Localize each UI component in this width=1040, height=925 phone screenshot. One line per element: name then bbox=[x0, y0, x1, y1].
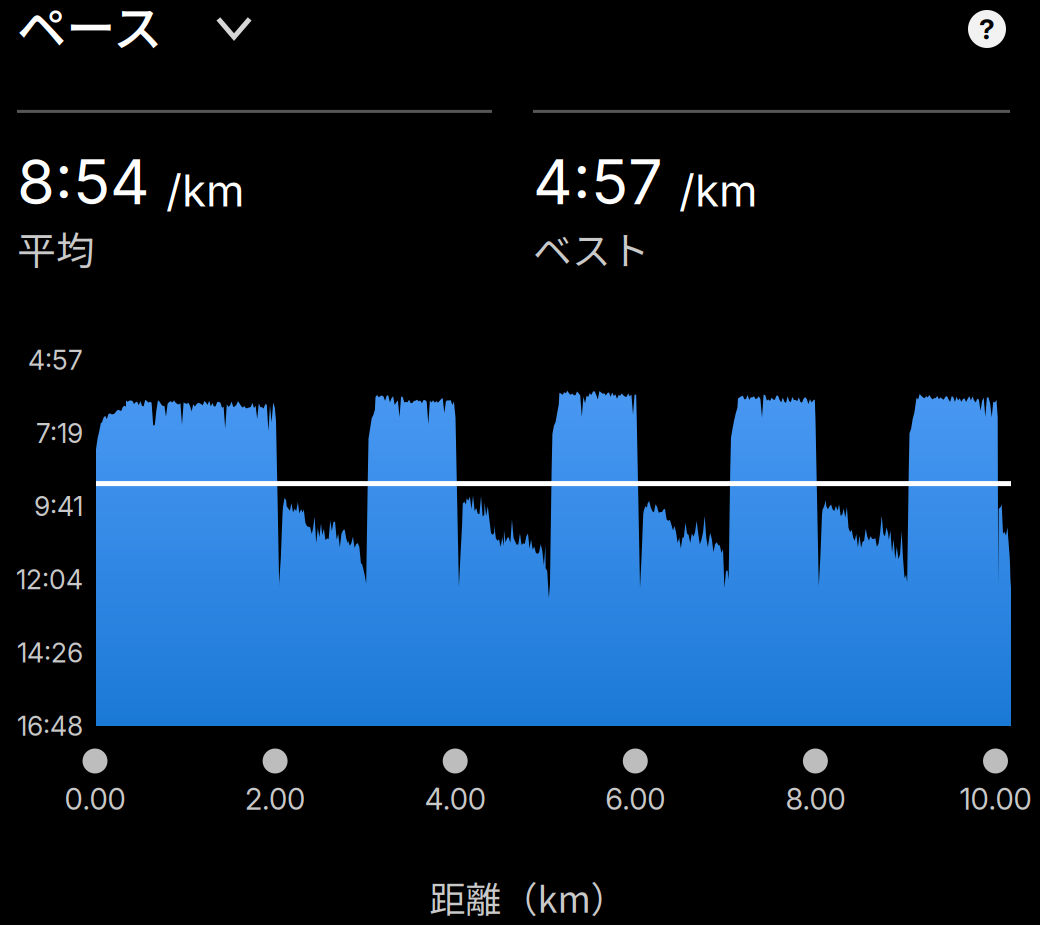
staticText: 16:48 bbox=[17, 710, 83, 742]
staticText: 7:19 bbox=[36, 417, 83, 449]
staticText: ペース bbox=[17, 0, 162, 61]
staticText: 4:57 bbox=[28, 344, 83, 376]
staticText: ? bbox=[979, 12, 995, 46]
staticText: /km bbox=[679, 164, 758, 217]
staticText: /km bbox=[166, 164, 245, 217]
staticText: 9:41 bbox=[34, 490, 83, 523]
staticText: 8:54 bbox=[17, 145, 150, 219]
staticText: 2.00 bbox=[245, 781, 305, 817]
button[interactable]: Help bbox=[953, 0, 1021, 63]
staticText: 8.00 bbox=[785, 781, 845, 817]
staticText: 0.00 bbox=[64, 781, 125, 817]
staticText: 距離（km） bbox=[429, 871, 626, 923]
staticText: 4.00 bbox=[425, 781, 486, 817]
staticText: 6.00 bbox=[605, 781, 665, 817]
button[interactable]: ペース bbox=[0, 0, 300, 56]
staticText: ベスト bbox=[533, 220, 650, 276]
staticText: 12:04 bbox=[16, 563, 83, 596]
staticText: 4:57 bbox=[533, 145, 663, 219]
staticText: 平均 bbox=[17, 220, 95, 276]
staticText: 10.00 bbox=[959, 781, 1031, 817]
staticText: 14:26 bbox=[17, 637, 83, 669]
